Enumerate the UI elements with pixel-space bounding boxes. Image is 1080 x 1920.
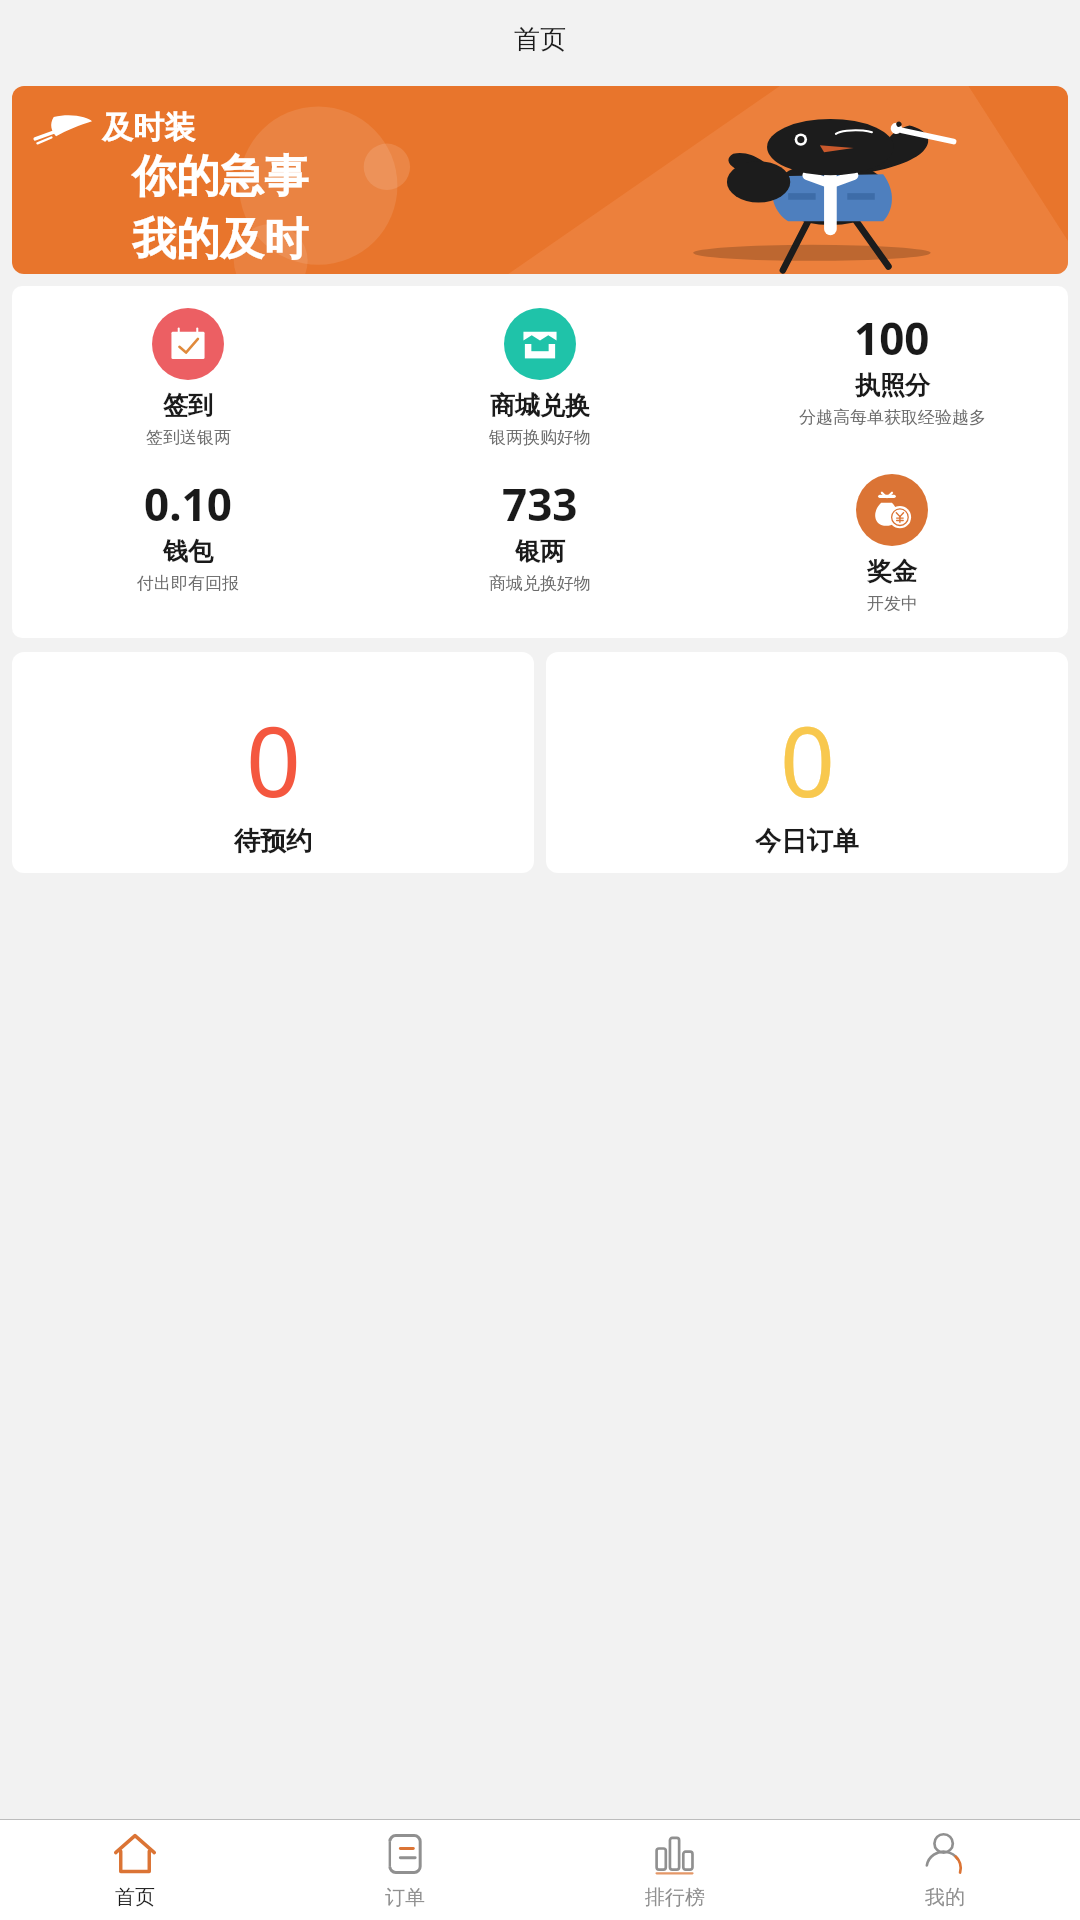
button[interactable]: 奖金 [716, 474, 1068, 614]
staticText: 签到 [163, 390, 213, 421]
staticText: 及时装 [102, 108, 195, 147]
staticText: 执照分 [855, 370, 930, 401]
staticText: 待预约 [234, 825, 312, 855]
staticText: 订单 [385, 1885, 425, 1910]
button[interactable]: 及时装 [12, 86, 1068, 274]
staticText: 签到送银两 [146, 427, 231, 448]
staticText: 银两换购好物 [489, 427, 591, 448]
staticText: 100 [854, 308, 930, 368]
button[interactable]: 0.10 [12, 474, 364, 594]
staticText: 付出即有回报 [137, 573, 239, 594]
staticText: 0.10 [144, 474, 232, 534]
button[interactable]: 733 [364, 474, 716, 594]
other: 签到 [152, 308, 224, 380]
button[interactable]: 订单 [270, 1820, 540, 1920]
staticText: 我的 [925, 1885, 965, 1910]
button[interactable]: 0 [546, 652, 1068, 873]
staticText: 0 [780, 694, 835, 825]
staticText: 分越高每单获取经验越多 [799, 407, 986, 428]
staticText: 商城兑换好物 [489, 573, 591, 594]
staticText: 银两 [515, 536, 565, 567]
staticText: 733 [502, 474, 578, 534]
button[interactable]: 0 [12, 652, 534, 873]
staticText: 奖金 [867, 556, 917, 587]
button[interactable]: 商城兑换 [364, 308, 716, 448]
button[interactable]: 排行榜 [540, 1820, 810, 1920]
button[interactable]: 签到 [12, 308, 364, 448]
staticText: 排行榜 [645, 1885, 705, 1910]
staticText: 0 [246, 694, 301, 825]
staticText: 开发中 [867, 593, 918, 614]
staticText: 首页 [115, 1885, 155, 1910]
other: 奖金 [856, 474, 928, 546]
other: 商城兑换 [504, 308, 576, 380]
button[interactable]: 我的 [810, 1820, 1080, 1920]
staticText: 你的急事 [132, 149, 308, 204]
button[interactable]: 100 [716, 308, 1068, 428]
staticText: 钱包 [163, 536, 213, 567]
staticText: 首页 [514, 23, 566, 56]
staticText: 今日订单 [755, 825, 859, 855]
button[interactable]: 首页 [0, 1820, 270, 1920]
staticText: 我的及时 [132, 212, 308, 267]
staticText: 商城兑换 [490, 390, 590, 421]
